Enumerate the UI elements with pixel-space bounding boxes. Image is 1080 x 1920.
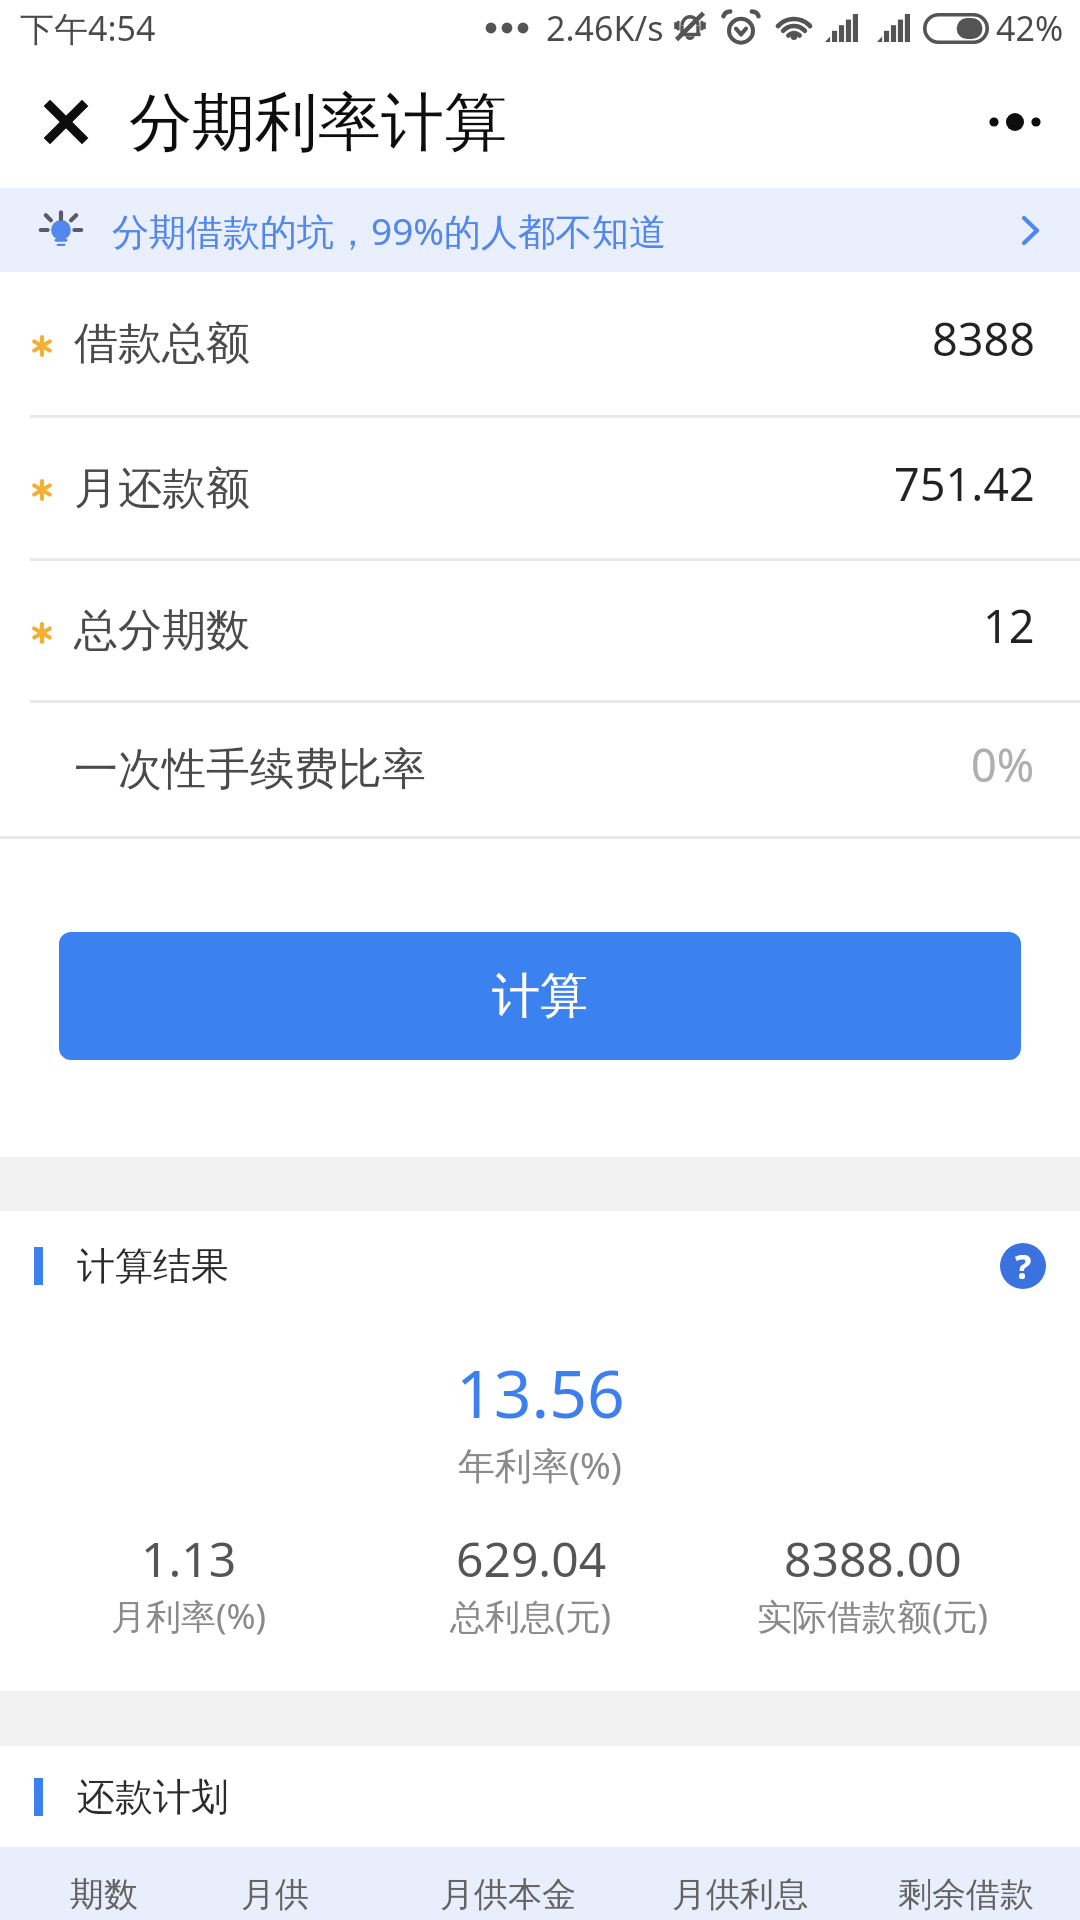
button[interactable]: 总分期数	[0, 561, 1080, 700]
staticText: 实际借款额(元)	[757, 1592, 989, 1640]
staticText: 计算结果	[77, 1242, 229, 1290]
staticText: 2.46K/s	[546, 5, 664, 51]
staticText: 8388.00	[784, 1526, 962, 1586]
staticText: 年利率(%)	[458, 1439, 622, 1490]
staticText: 月供	[241, 1873, 309, 1916]
staticText: 0%	[971, 734, 1035, 795]
staticText: 42%	[996, 5, 1064, 51]
staticText: 月利率(%)	[111, 1592, 267, 1640]
staticText: 分期利率计算	[129, 83, 507, 162]
staticText: 借款总额	[74, 316, 250, 371]
button[interactable]: 计算	[59, 932, 1021, 1060]
staticText: 月供本金	[440, 1873, 576, 1916]
staticText: 月供利息	[672, 1873, 808, 1916]
staticText: 月还款额	[74, 461, 250, 516]
button[interactable]: 借款总额	[0, 272, 1080, 415]
button[interactable]: Close	[30, 86, 102, 158]
staticText: 计算	[492, 966, 588, 1026]
staticText: 一次性手续费比率	[74, 742, 426, 797]
staticText: 分期借款的坑，99%的人都不知道	[112, 205, 667, 256]
staticText: 751.42	[894, 453, 1035, 514]
staticText: 期数	[70, 1873, 138, 1916]
staticText: 总分期数	[74, 603, 250, 658]
button[interactable]: Help	[1000, 1243, 1046, 1289]
staticText: 629.04	[456, 1526, 607, 1586]
button[interactable]: 一次性手续费比率	[0, 703, 1080, 836]
staticText: 12	[983, 595, 1035, 656]
staticText: 下午4:54	[20, 5, 156, 51]
staticText: 1.13	[141, 1526, 237, 1586]
staticText: 还款计划	[77, 1773, 229, 1821]
staticText: 剩余借款	[898, 1873, 1034, 1916]
staticText: 8388	[932, 308, 1035, 369]
button[interactable]: 分期借款的坑，99%的人都不知道	[0, 188, 1080, 272]
staticText: 13.56	[456, 1347, 625, 1432]
button[interactable]: More options	[972, 79, 1058, 165]
button[interactable]: 月还款额	[0, 418, 1080, 558]
staticText: 总利息(元)	[450, 1592, 612, 1640]
staticText: ?	[1015, 1243, 1032, 1289]
